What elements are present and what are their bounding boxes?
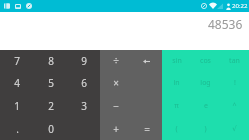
button[interactable]: 3 [67, 94, 100, 117]
button[interactable]: × [100, 72, 131, 94]
staticText: 8 [48, 54, 54, 68]
button[interactable]: Backspace [131, 50, 162, 72]
staticText: π [174, 101, 179, 111]
staticText: 48536 [208, 16, 243, 32]
staticText: 6 [81, 76, 87, 90]
staticText: + [113, 122, 119, 136]
button[interactable]: 7 [0, 50, 34, 72]
button[interactable]: 8 [34, 50, 67, 72]
staticText: e [204, 101, 208, 111]
button[interactable]: 6 [67, 72, 100, 94]
staticText: 1 [14, 99, 20, 113]
button[interactable]: ÷ [100, 50, 131, 72]
staticText: × [113, 76, 119, 90]
button[interactable]: tan [220, 50, 249, 72]
staticText: tan [229, 56, 240, 66]
staticText: 3 [81, 99, 87, 113]
staticText: 9 [81, 54, 87, 68]
button[interactable]: 1 [0, 94, 34, 117]
staticText: 5 [48, 76, 54, 90]
staticText: ! [234, 78, 236, 88]
button[interactable]: = [131, 117, 162, 140]
staticText: 20:22 [232, 2, 248, 10]
staticText: ln [173, 78, 180, 88]
staticText: ( [175, 124, 178, 134]
staticText: √ [232, 125, 237, 133]
button[interactable]: 0 [34, 117, 67, 140]
staticText: sin [172, 56, 182, 66]
button[interactable]: 4 [0, 72, 34, 94]
staticText: 2 [48, 99, 54, 113]
button[interactable]: + [100, 117, 131, 140]
button[interactable]: − [100, 94, 131, 117]
button[interactable]: 2 [34, 94, 67, 117]
staticText: 4 [14, 76, 20, 90]
staticText: cos [200, 56, 211, 66]
button[interactable]: cos [191, 50, 220, 72]
button[interactable]: sin [162, 50, 191, 72]
staticText: ÷ [113, 54, 119, 68]
staticText: log [200, 78, 211, 88]
staticText: 0 [48, 122, 54, 136]
staticText: ^ [232, 101, 237, 111]
button[interactable]: ln [162, 72, 191, 94]
button[interactable]: 9 [67, 50, 100, 72]
button[interactable]: 5 [34, 72, 67, 94]
staticText: = [144, 122, 150, 136]
button[interactable]: log [191, 72, 220, 94]
staticText: . [16, 122, 19, 136]
staticText: 7 [14, 54, 20, 68]
button[interactable]: . [0, 117, 34, 140]
staticText: − [113, 99, 119, 113]
staticText: ) [204, 124, 207, 134]
